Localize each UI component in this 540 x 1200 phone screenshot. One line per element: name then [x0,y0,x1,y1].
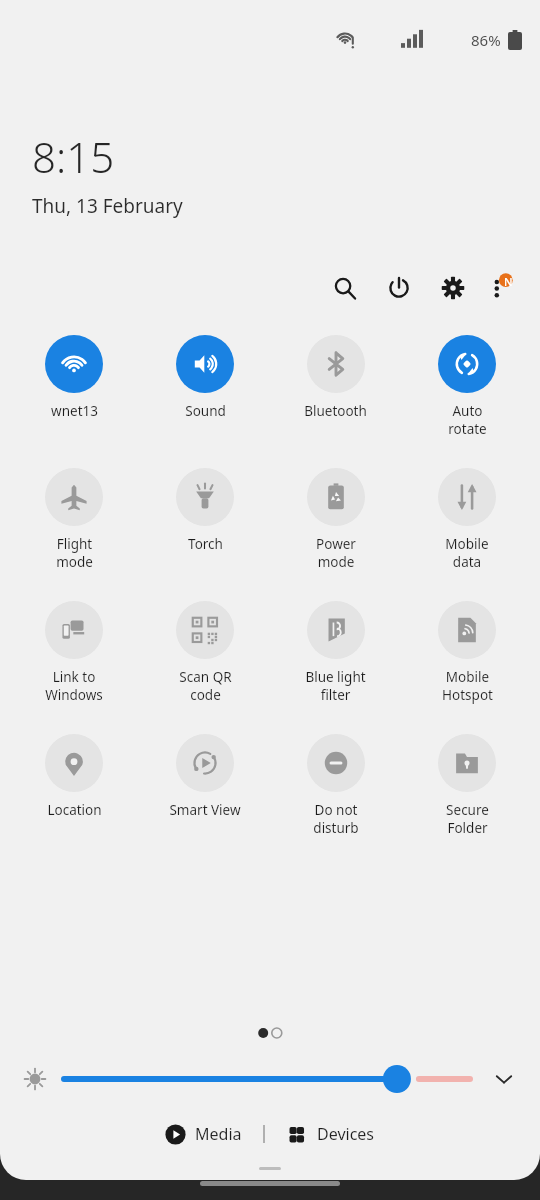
staticText: wnet13 [51,402,98,420]
button[interactable]: Search [324,267,366,309]
button[interactable]: Bluetooth [304,331,367,420]
staticText: Mobile Hotspot [442,668,493,704]
button[interactable]: Location [45,730,103,819]
staticText: 8:15 [32,128,115,185]
staticText: Sound [185,402,226,420]
button[interactable]: Mobile Hotspot [438,597,496,704]
button[interactable]: Mobile data [438,464,496,571]
button[interactable]: Scan QR code [176,597,234,704]
staticText: N [504,274,513,289]
staticText: Bluetooth [304,402,367,420]
staticText: Torch [188,535,223,553]
button[interactable]: Link to Windows [45,597,103,704]
button[interactable]: Expand brightness settings [484,1059,524,1099]
staticText: Link to Windows [45,668,103,704]
staticText: Flight mode [56,535,93,571]
button[interactable]: Devices [277,1115,385,1153]
staticText: Thu, 13 February [32,193,183,219]
button[interactable]: Power [378,267,420,309]
button[interactable]: Secure Folder [438,730,496,837]
button[interactable]: Do not disturb [307,730,365,837]
staticText: Auto rotate [448,402,487,438]
staticText: Devices [317,1123,375,1145]
button[interactable]: More options [480,267,522,309]
staticText: Do not disturb [313,801,359,837]
button[interactable]: Auto rotate [438,331,496,438]
staticText: Media [195,1123,242,1145]
button[interactable]: Media [155,1115,252,1153]
staticText: Power mode [316,535,356,571]
staticText: Blue light filter [305,668,366,704]
button[interactable]: Blue light filter [305,597,366,704]
button[interactable]: Flight mode [45,464,103,571]
staticText: Smart View [169,801,241,819]
button[interactable]: Sound [176,331,234,420]
staticText: Location [47,801,102,819]
button[interactable]: Power mode [307,464,365,571]
button[interactable]: Settings [432,267,474,309]
staticText: 86% [471,30,501,50]
staticText: Scan QR code [179,668,232,704]
button[interactable]: Smart View [169,730,241,819]
button[interactable]: Brightness [64,1059,470,1099]
button[interactable]: Torch [176,464,234,553]
staticText: Mobile data [445,535,489,571]
button[interactable]: wnet13 [45,331,103,420]
staticText: Secure Folder [446,801,489,837]
